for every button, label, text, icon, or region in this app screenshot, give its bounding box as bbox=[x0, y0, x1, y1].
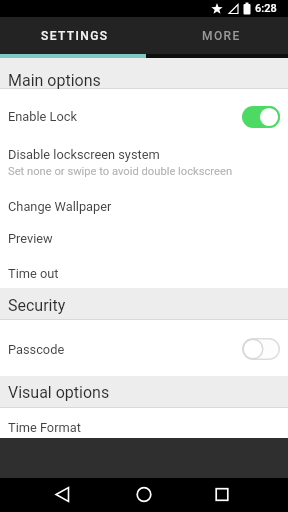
button[interactable] bbox=[48, 481, 76, 509]
staticText: Preview bbox=[8, 231, 53, 246]
button[interactable]: Time out bbox=[0, 259, 288, 288]
button[interactable]: Change Wallpaper bbox=[0, 191, 288, 221]
staticText: Set none or swipe to avoid double locksc… bbox=[8, 165, 233, 178]
staticText: Time out bbox=[8, 266, 59, 281]
staticText: Disable lockscreen system bbox=[8, 147, 160, 162]
button[interactable] bbox=[208, 481, 236, 509]
button[interactable]: Disable lockscreen system bbox=[0, 139, 288, 169]
button[interactable]: Passcode bbox=[0, 334, 288, 364]
staticText: Passcode bbox=[8, 342, 65, 357]
button[interactable] bbox=[242, 106, 280, 128]
button[interactable]: SETTINGS bbox=[0, 17, 144, 54]
button[interactable]: Preview bbox=[0, 224, 288, 253]
staticText: Change Wallpaper bbox=[8, 199, 112, 214]
button[interactable]: Enable Lock bbox=[0, 101, 288, 131]
button[interactable]: MORE bbox=[144, 17, 288, 54]
staticText: SETTINGS bbox=[41, 29, 109, 43]
staticText: Time Format bbox=[8, 420, 81, 435]
staticText: 6:28 bbox=[255, 2, 277, 15]
button[interactable] bbox=[242, 338, 280, 360]
staticText: MORE bbox=[202, 29, 241, 43]
staticText: Security bbox=[8, 296, 66, 315]
button[interactable]: Time Format bbox=[0, 412, 288, 442]
staticText: Main options bbox=[8, 71, 101, 90]
staticText: Enable Lock bbox=[8, 109, 77, 124]
staticText: Visual options bbox=[8, 383, 110, 402]
button[interactable] bbox=[130, 481, 158, 509]
